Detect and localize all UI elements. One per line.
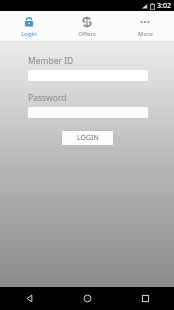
staticText: 3:02 [157, 1, 171, 11]
button[interactable]: Home [58, 287, 116, 310]
staticText: Login [21, 30, 37, 38]
button[interactable]: Recent apps [116, 287, 174, 310]
button[interactable]: More [116, 11, 174, 41]
button[interactable]: LOGIN [61, 130, 114, 146]
staticText: Member ID [28, 55, 74, 67]
button[interactable]: Login [0, 11, 58, 41]
button[interactable]: Back [0, 287, 58, 310]
button[interactable]: Offers [58, 11, 116, 41]
staticText: LOGIN [77, 133, 99, 143]
staticText: More [138, 30, 153, 38]
staticText: Offers [78, 30, 96, 38]
staticText: Password [28, 92, 67, 104]
